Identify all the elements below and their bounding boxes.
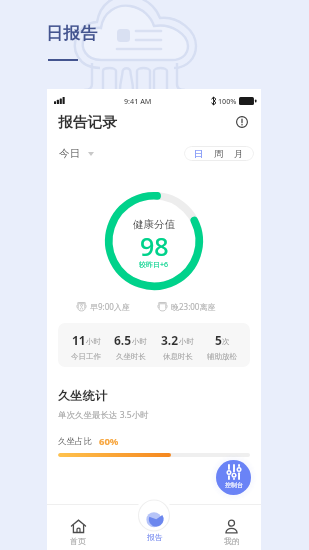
- staticText: 月: [234, 148, 244, 160]
- staticText: 首页: [70, 536, 86, 546]
- staticText: 100%: [218, 96, 237, 106]
- button[interactable]: 报告: [119, 510, 190, 542]
- staticText: 小时: [132, 337, 147, 346]
- staticText: 日报告: [46, 23, 98, 44]
- staticText: 今日工作: [71, 352, 101, 361]
- button[interactable]: 周: [214, 148, 224, 160]
- staticText: 11: [72, 332, 86, 348]
- staticText: 日: [194, 148, 204, 160]
- staticText: 次: [222, 337, 230, 346]
- staticText: 小时: [179, 337, 194, 346]
- staticText: 报告: [147, 532, 163, 542]
- staticText: 辅助放松: [207, 352, 237, 361]
- button[interactable]: 今日: [59, 147, 94, 160]
- staticText: 60%: [99, 435, 119, 448]
- staticText: 单次久坐最长达 3.5小时: [58, 409, 149, 421]
- staticText: 报告记录: [58, 113, 118, 131]
- staticText: 今日: [59, 147, 80, 160]
- staticText: 周: [214, 148, 224, 160]
- button[interactable]: 我的: [196, 510, 267, 546]
- staticText: 早9:00入座: [90, 301, 130, 312]
- staticText: 久坐时长: [116, 352, 146, 361]
- button[interactable]: 月: [234, 148, 244, 160]
- staticText: 久坐占比: [58, 436, 92, 447]
- button[interactable]: 首页: [42, 510, 114, 546]
- staticText: 晚23:00离座: [171, 301, 216, 312]
- staticText: 健康分值: [133, 218, 175, 231]
- staticText: 6.5: [114, 332, 132, 348]
- staticText: 我的: [224, 536, 240, 546]
- staticText: 较昨日+6: [139, 260, 169, 270]
- button[interactable]: 日: [194, 148, 204, 160]
- staticText: 控制台: [225, 481, 243, 489]
- staticText: 久坐统计: [58, 388, 108, 403]
- staticText: 5: [215, 332, 222, 348]
- staticText: 休息时长: [163, 352, 193, 361]
- staticText: 3.2: [161, 332, 179, 348]
- button[interactable]: Info: [235, 115, 249, 129]
- staticText: 小时: [86, 337, 101, 346]
- button[interactable]: 控制台: [216, 460, 251, 495]
- staticText: 9:41 AM: [124, 96, 152, 106]
- staticText: 98: [140, 229, 169, 263]
